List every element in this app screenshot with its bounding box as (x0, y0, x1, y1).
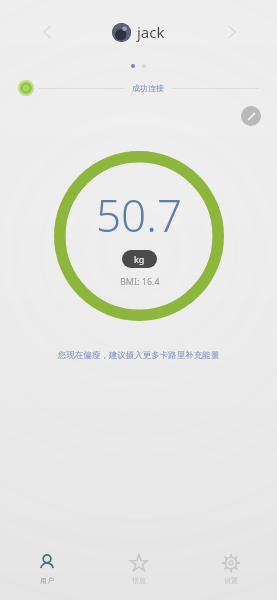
staticText: BMI: 16.4 (120, 275, 160, 287)
staticText: 您现在偏瘦，建议摄入更多卡路里补充能量 (46, 350, 231, 361)
button[interactable]: User (0, 538, 93, 600)
staticText: jack (137, 22, 165, 42)
button[interactable]: Settings (185, 538, 277, 600)
staticText: 成功连接 (132, 83, 164, 93)
button[interactable]: Next user (219, 19, 245, 45)
staticText: 用户 (40, 576, 54, 585)
staticText: 设置 (224, 576, 238, 585)
button[interactable]: Profile photo (112, 23, 131, 42)
staticText: 50.7 (96, 185, 183, 245)
button[interactable]: Info (93, 538, 185, 600)
button[interactable]: Previous user (34, 19, 60, 45)
staticText: 信息 (132, 576, 146, 585)
button[interactable]: Edit (241, 106, 261, 126)
staticText: kg (134, 253, 145, 265)
button[interactable]: kg (122, 250, 157, 268)
